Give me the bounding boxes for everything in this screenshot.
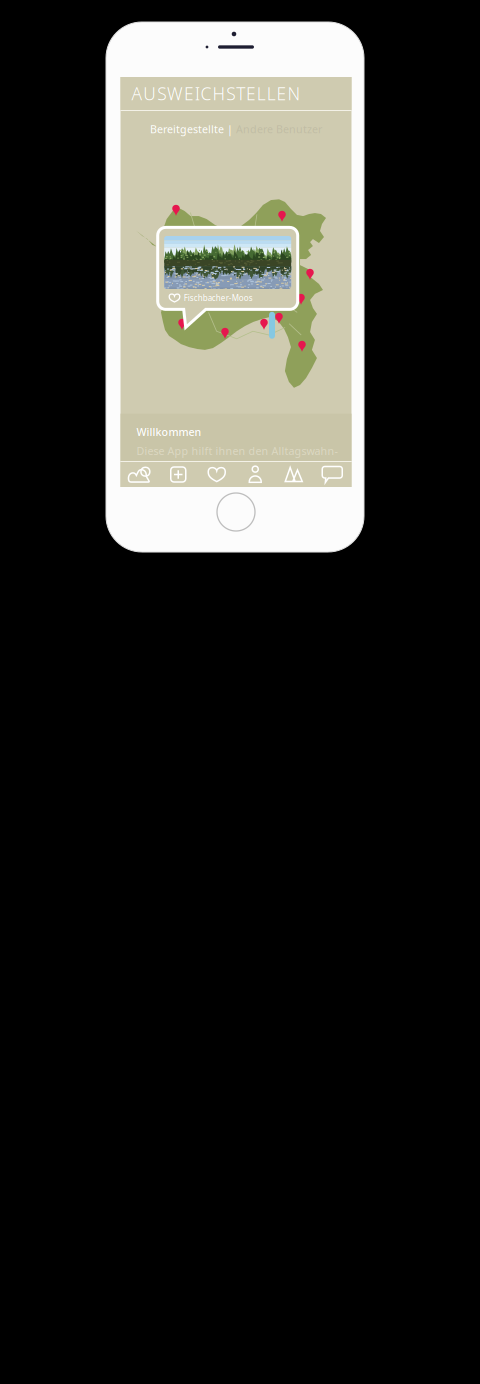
- button[interactable]: Andere Benutzer: [236, 109, 330, 149]
- button[interactable]: Wetter: [120, 462, 159, 487]
- staticText: |: [224, 122, 236, 136]
- button[interactable]: Hinzufügen: [159, 462, 197, 487]
- staticText: Bereitgestellte: [150, 122, 224, 136]
- button[interactable]: Favoriten: [197, 462, 236, 487]
- button[interactable]: Bereitgestellte: [142, 109, 224, 149]
- staticText: Fischbacher-Moos: [184, 293, 253, 303]
- button[interactable]: Nachrichten: [313, 462, 351, 487]
- staticText: Andere Benutzer: [236, 122, 322, 136]
- staticText: AUSWEICHSTELLEN: [131, 82, 300, 105]
- staticText: Diese App hilft ihnen den Alltagswahn-: [136, 444, 337, 458]
- button[interactable]: Fischbacher-Moos: [158, 227, 298, 327]
- button[interactable]: Touren: [274, 462, 313, 487]
- button[interactable]: AUSWEICHSTELLEN: [120, 77, 351, 110]
- button[interactable]: Profil: [236, 462, 274, 487]
- staticText: Willkommen: [136, 425, 201, 439]
